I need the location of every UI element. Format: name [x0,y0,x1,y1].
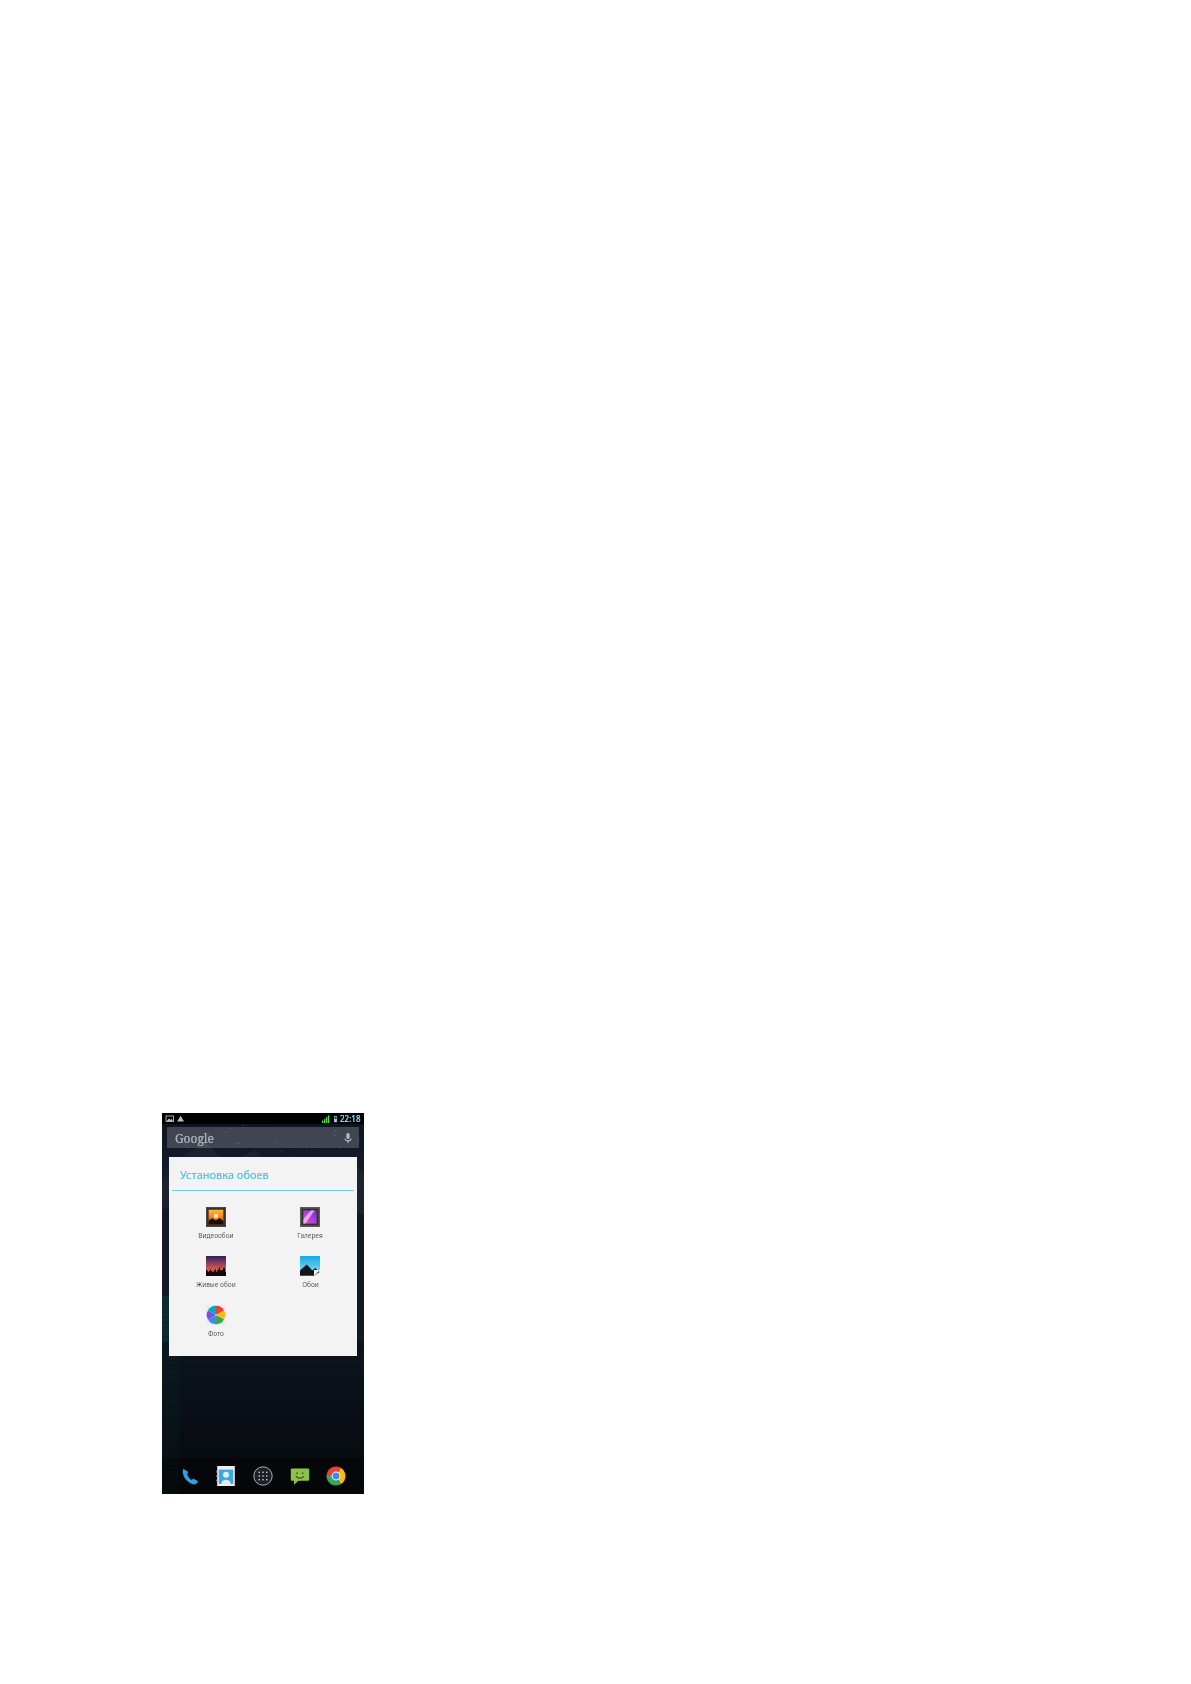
staticText: 22:18 [340,1113,361,1124]
staticText: Галерея [297,1231,323,1240]
button[interactable]: Фото [169,1303,263,1340]
staticText: Живые обои [196,1280,236,1289]
staticText: Google [175,1130,215,1146]
button[interactable]: Messaging [287,1463,313,1489]
other: Voice search [344,1132,352,1144]
staticText: Обои [302,1280,319,1289]
button[interactable]: Phone [177,1463,203,1489]
button[interactable]: Живые обои [169,1254,263,1291]
staticText: Установка обоев [180,1167,269,1182]
button[interactable]: Google [167,1127,359,1148]
button[interactable]: Галерея [263,1205,357,1242]
button[interactable]: All apps [250,1463,276,1489]
button[interactable]: Contacts [213,1463,239,1489]
staticText: Фото [208,1329,224,1338]
button[interactable]: Обои [263,1254,357,1291]
button[interactable]: Видеообои [169,1205,263,1242]
button[interactable]: Chrome [323,1463,349,1489]
staticText: Видеообои [198,1231,234,1240]
